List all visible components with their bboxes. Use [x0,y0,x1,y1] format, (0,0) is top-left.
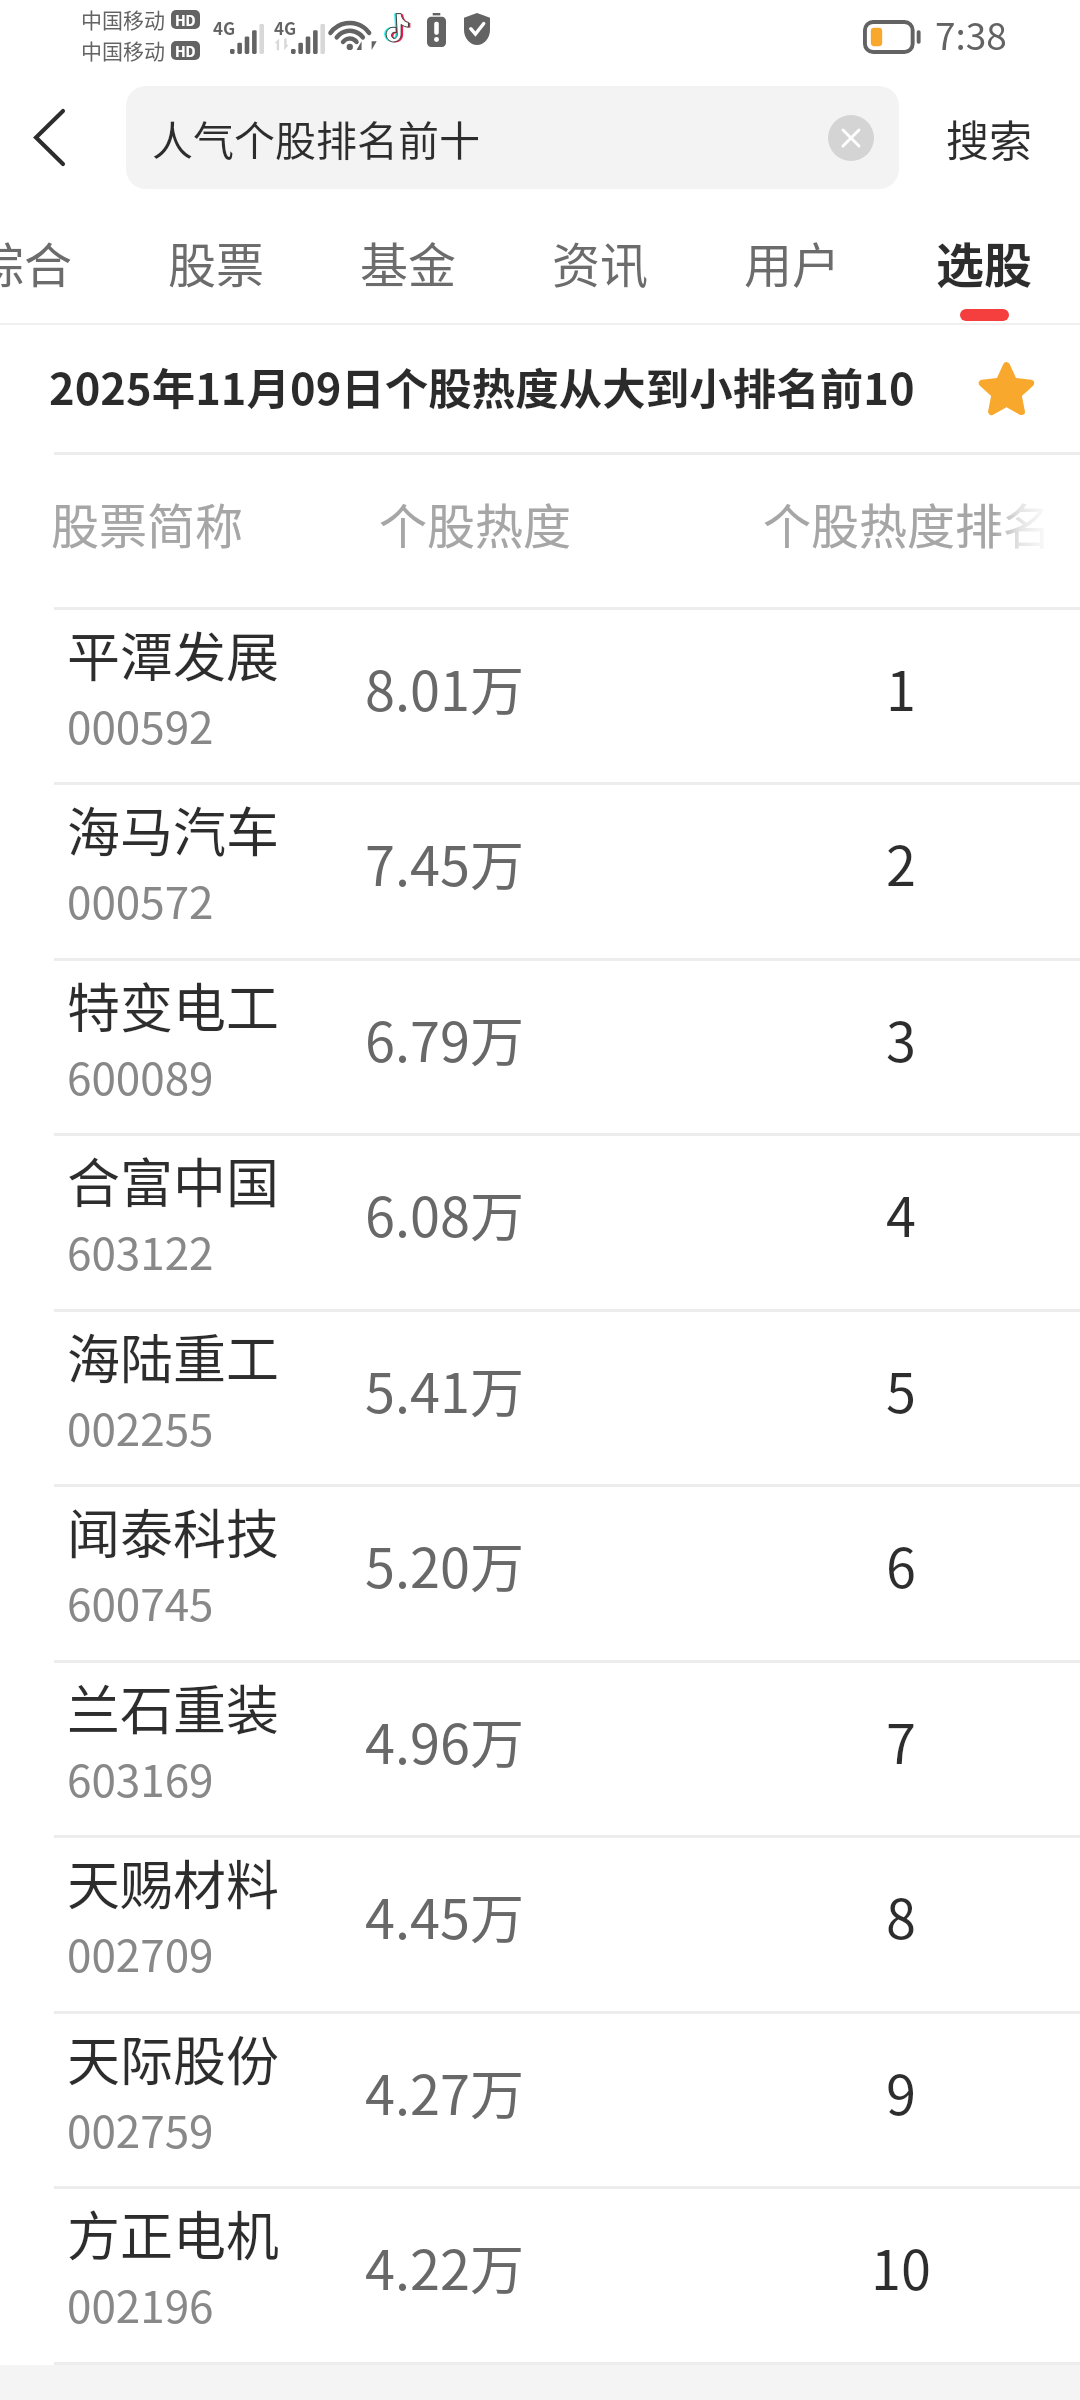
staticText: 特变电工 [67,967,279,1044]
staticText: 合富中国 [67,1142,279,1219]
staticText: 中国移动 [81,4,165,34]
staticText: 5 [886,1350,916,1428]
staticText: 4.27万 [365,2052,524,2130]
staticText: 1 [886,648,916,726]
staticText: HD [175,10,196,29]
staticText: 闻泰科技 [67,1493,279,1570]
staticText: 3 [886,999,916,1077]
staticText: 兰石重装 [67,1669,279,1746]
staticText: 5.41万 [365,1350,524,1428]
staticText: 4G [213,15,236,40]
staticText: 9 [886,2052,916,2130]
staticText: 600745 [67,1570,214,1634]
button[interactable]: 兰石重装 [0,1663,1080,1838]
staticText: 平潭发展 [67,616,279,693]
staticText: 4G [274,15,297,40]
staticText: 海马汽车 [67,791,279,868]
button[interactable]: 基金 [312,200,504,323]
button[interactable]: 特变电工 [0,961,1080,1136]
button[interactable]: 股票 [120,200,312,323]
button[interactable]: 海马汽车 [0,785,1080,961]
staticText: 4 [886,1174,916,1252]
staticText: 人气个股排名前十 [152,108,480,167]
staticText: 综合 [0,227,73,297]
staticText: 6.79万 [365,999,524,1077]
staticText: 7:38 [935,7,1007,61]
staticText: 用户 [744,227,841,297]
button[interactable]: 天际股份 [0,2014,1080,2189]
button[interactable]: 闻泰科技 [0,1487,1080,1663]
staticText: 002196 [67,2272,214,2336]
staticText: 000592 [67,693,214,757]
button[interactable]: 方正电机 [0,2189,1080,2365]
button[interactable]: Back [0,86,126,200]
staticText: 2025年11月09日个股热度从大到小排名前10 [49,355,915,418]
staticText: 基金 [360,227,457,297]
button[interactable]: 选股 [888,200,1080,323]
button[interactable]: Favorite [976,359,1036,419]
staticText: 4.96万 [365,1701,524,1779]
staticText: 002759 [67,2097,214,2161]
staticText: 4.22万 [365,2227,524,2305]
staticText: 002709 [67,1921,214,1985]
staticText: 中国移动 [81,35,165,65]
staticText: 股票简称 [51,488,244,558]
button[interactable]: 综合 [0,200,120,323]
staticText: 8.01万 [365,648,524,726]
staticText: 8 [886,1876,916,1954]
staticText: 000572 [67,868,214,932]
staticText: 2 [886,823,916,901]
button[interactable]: 资讯 [504,200,696,323]
staticText: 4.45万 [365,1876,524,1954]
staticText: 搜索 [946,107,1032,169]
staticText: 7.45万 [365,823,524,901]
button[interactable]: 天赐材料 [0,1838,1080,2014]
button[interactable]: 用户 [696,200,888,323]
staticText: 方正电机 [67,2195,279,2272]
staticText: HD [175,41,196,60]
staticText: 7 [886,1701,916,1779]
staticText: 603122 [67,1219,214,1283]
button[interactable]: 海陆重工 [0,1312,1080,1487]
staticText: 个股热度排名 [763,488,1052,558]
staticText: 5.20万 [365,1525,524,1603]
button[interactable]: Clear search [828,115,874,161]
staticText: 603169 [67,1746,214,1810]
staticText: 天赐材料 [67,1844,279,1921]
staticText: 选股 [936,227,1033,297]
staticText: 海陆重工 [67,1318,279,1395]
button[interactable]: 人气个股排名前十 [126,86,899,189]
staticText: 资讯 [552,227,649,297]
button[interactable]: 搜索 [899,86,1080,189]
button[interactable]: 平潭发展 [0,610,1080,785]
staticText: 002255 [67,1395,214,1459]
button[interactable]: 合富中国 [0,1136,1080,1312]
staticText: 6.08万 [365,1174,524,1252]
staticText: 600089 [67,1044,214,1108]
staticText: 股票 [168,227,265,297]
staticText: 10 [871,2227,931,2305]
staticText: 个股热度 [379,488,572,558]
staticText: 天际股份 [67,2020,279,2097]
staticText: 6 [886,1525,916,1603]
